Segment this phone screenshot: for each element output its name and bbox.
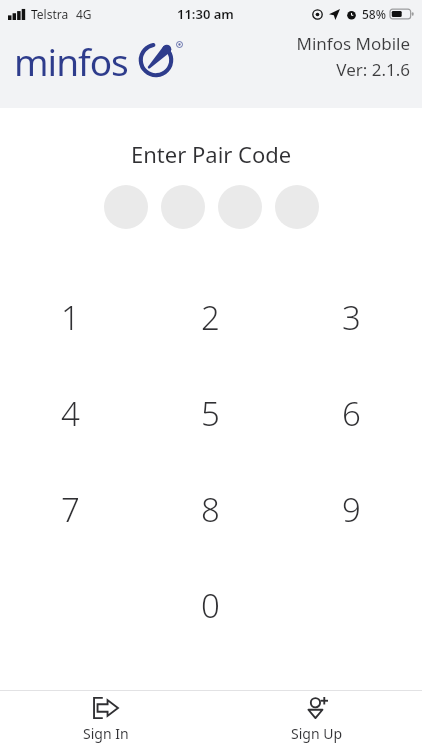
button[interactable]: 0 [140,583,281,623]
button[interactable]: 2 [140,295,281,335]
staticText: 2 [201,295,220,335]
button[interactable]: 6 [281,391,422,431]
other: Sign In [93,697,119,719]
staticText: 7 [61,487,80,527]
staticText: 5 [201,391,220,431]
button[interactable]: 9 [281,487,422,527]
staticText: Enter Pair Code [131,139,292,169]
staticText: Minfos Mobile [296,32,410,55]
button[interactable]: 1 [0,295,140,335]
button[interactable]: 3 [281,295,422,335]
staticText: 9 [342,487,361,527]
staticText: 1 [61,295,80,335]
staticText: 0 [201,583,220,623]
staticText: 4G [76,6,92,22]
staticText: 3 [342,295,361,335]
staticText: 6 [342,391,361,431]
button[interactable]: 5 [140,391,281,431]
button[interactable]: 4 [0,391,140,431]
button[interactable]: Sign In [0,690,211,750]
button[interactable]: 7 [0,487,140,527]
staticText: Telstra [31,6,69,22]
staticText: 11:30 am [177,5,234,23]
staticText: Sign In [83,724,129,743]
button[interactable]: Sign Up [211,690,422,750]
other: Sign Up [304,697,330,719]
staticText: minfos [14,36,128,86]
staticText: Sign Up [291,724,343,743]
staticText: 4 [61,391,80,431]
staticText: 8 [201,487,220,527]
staticText: 58% [362,6,386,22]
button[interactable]: 8 [140,487,281,527]
staticText: Ver: 2.1.6 [336,58,410,81]
